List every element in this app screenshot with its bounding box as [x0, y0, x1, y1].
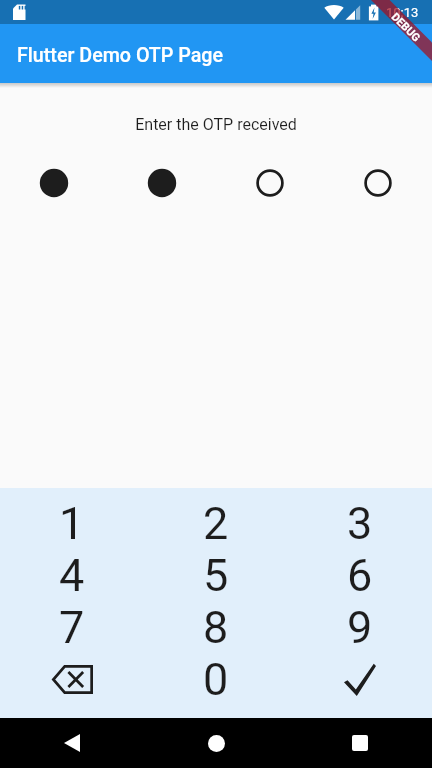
staticText: 5	[203, 549, 229, 601]
staticText: Enter the OTP received	[0, 115, 432, 134]
button[interactable]: 6	[288, 549, 432, 601]
staticText: 6	[347, 549, 373, 601]
staticText: 8	[203, 601, 229, 653]
button[interactable]: 5	[144, 549, 288, 601]
staticText: DEBUG	[388, 10, 423, 45]
button[interactable]: Backspace	[0, 653, 144, 705]
button[interactable]: 9	[288, 601, 432, 653]
button[interactable]	[324, 167, 432, 199]
staticText: 3	[347, 497, 373, 549]
button[interactable]: Back	[0, 718, 144, 768]
staticText: 9	[347, 601, 373, 653]
button[interactable]: Recent apps	[288, 718, 432, 768]
button[interactable]	[216, 167, 324, 199]
staticText: 10:13	[386, 5, 419, 20]
button[interactable]: 1	[0, 497, 144, 549]
button[interactable]: 3	[288, 497, 432, 549]
button[interactable]: 7	[0, 601, 144, 653]
staticText: 1	[59, 497, 85, 549]
staticText: 0	[203, 653, 229, 705]
button[interactable]: 0	[144, 653, 288, 705]
staticText: Flutter Demo OTP Page	[17, 44, 224, 67]
other: Backspace	[52, 665, 93, 694]
other: Confirm	[344, 663, 376, 696]
button[interactable]	[108, 167, 216, 199]
button[interactable]	[0, 167, 108, 199]
staticText: 7	[59, 601, 85, 653]
button[interactable]: 4	[0, 549, 144, 601]
staticText: 2	[203, 497, 229, 549]
button[interactable]: Home	[144, 718, 288, 768]
button[interactable]: Confirm	[288, 653, 432, 705]
staticText: 4	[59, 549, 85, 601]
button[interactable]: 2	[144, 497, 288, 549]
button[interactable]: 8	[144, 601, 288, 653]
